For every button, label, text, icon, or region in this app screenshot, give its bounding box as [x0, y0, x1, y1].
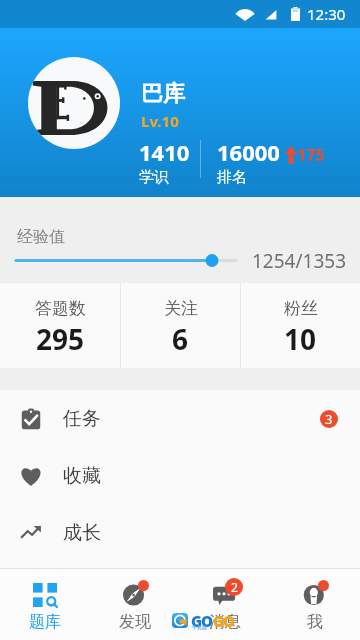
staticText: 经验值: [17, 227, 65, 247]
staticText: 我: [307, 612, 323, 632]
button[interactable]: 粉丝: [241, 283, 360, 368]
staticText: GO: [213, 611, 235, 630]
button[interactable]: 题库: [0, 569, 90, 640]
staticText: 粉丝: [284, 298, 318, 319]
staticText: Lv.10: [141, 111, 179, 131]
button[interactable]: Avatar: [28, 57, 120, 149]
staticText: 1254/1353: [252, 248, 347, 274]
staticText: 关注: [164, 298, 198, 319]
staticText: 任务: [63, 407, 101, 431]
staticText: 10: [284, 320, 317, 358]
staticText: 2: [231, 579, 238, 595]
staticText: 答题数: [35, 298, 86, 319]
staticText: GO: [191, 611, 213, 630]
staticText: 学识: [139, 168, 169, 187]
button[interactable]: 成长: [0, 504, 360, 561]
staticText: 6: [172, 320, 189, 358]
staticText: 发现: [119, 612, 151, 632]
staticText: 1410: [139, 137, 190, 167]
staticText: 16000: [217, 137, 280, 167]
staticText: 175: [297, 144, 325, 166]
staticText: 手机版: [192, 624, 207, 630]
staticText: 排名: [217, 168, 247, 187]
staticText: 巴库: [141, 80, 185, 108]
staticText: 收藏: [63, 464, 101, 488]
button[interactable]: 关注: [121, 283, 240, 368]
staticText: 295: [36, 320, 85, 358]
button[interactable]: 消息: [180, 569, 270, 640]
staticText: 12:30: [307, 4, 346, 24]
staticText: 消息: [209, 612, 241, 632]
staticText: 题库: [29, 612, 61, 632]
button[interactable]: 答题数: [0, 283, 120, 368]
staticText: 成长: [63, 521, 101, 545]
button[interactable]: 任务: [0, 390, 360, 447]
staticText: 3: [325, 410, 333, 428]
button[interactable]: 发现: [90, 569, 180, 640]
button[interactable]: 我: [270, 569, 360, 640]
button[interactable]: 收藏: [0, 447, 360, 504]
